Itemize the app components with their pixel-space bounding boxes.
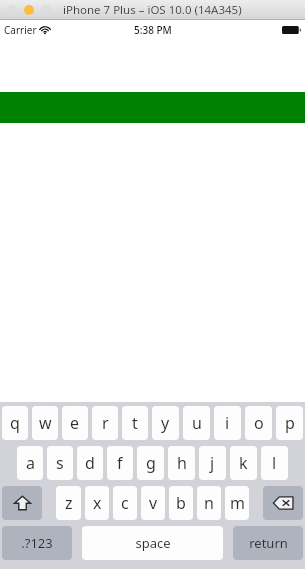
- button[interactable]: l: [261, 446, 288, 480]
- staticText: s: [56, 452, 64, 474]
- staticText: e: [70, 412, 80, 434]
- button[interactable]: f: [107, 446, 133, 480]
- staticText: n: [204, 492, 214, 514]
- button[interactable]: y: [152, 406, 179, 440]
- staticText: .?123: [21, 534, 53, 552]
- staticText: j: [210, 452, 215, 474]
- button[interactable]: c: [113, 486, 137, 520]
- staticText: 5:38 PM: [134, 23, 172, 37]
- button[interactable]: j: [199, 446, 226, 480]
- staticText: space: [135, 534, 171, 552]
- button[interactable]: u: [183, 406, 210, 440]
- staticText: c: [121, 492, 129, 514]
- staticText: t: [132, 412, 138, 434]
- button[interactable]: Shift: [2, 486, 42, 520]
- staticText: k: [239, 452, 248, 474]
- button[interactable]: i: [214, 406, 241, 440]
- button[interactable]: o: [245, 406, 272, 440]
- button[interactable]: h: [168, 446, 195, 480]
- staticText: l: [272, 452, 277, 474]
- staticText: b: [176, 492, 186, 514]
- button[interactable]: x: [85, 486, 109, 520]
- button[interactable]: return: [233, 526, 303, 560]
- staticText: i: [225, 412, 230, 434]
- staticText: o: [254, 412, 264, 434]
- staticText: Carrier: [4, 23, 37, 37]
- button[interactable]: d: [77, 446, 103, 480]
- button[interactable]: .?123: [2, 526, 72, 560]
- button[interactable]: e: [62, 406, 88, 440]
- button[interactable]: Minimize window: [24, 5, 34, 15]
- button[interactable]: n: [197, 486, 221, 520]
- button[interactable]: z: [56, 486, 81, 520]
- staticText: q: [10, 412, 20, 434]
- staticText: z: [65, 492, 73, 514]
- staticText: r: [102, 412, 109, 434]
- staticText: a: [26, 452, 35, 474]
- staticText: u: [192, 412, 202, 434]
- staticText: m: [230, 492, 245, 514]
- button[interactable]: p: [276, 406, 303, 440]
- staticText: p: [285, 412, 295, 434]
- button[interactable]: k: [230, 446, 257, 480]
- button[interactable]: r: [92, 406, 118, 440]
- button[interactable]: a: [17, 446, 43, 480]
- button[interactable]: s: [47, 446, 73, 480]
- staticText: f: [117, 452, 123, 474]
- button[interactable]: b: [169, 486, 193, 520]
- staticText: v: [149, 492, 158, 514]
- staticText: x: [93, 492, 102, 514]
- staticText: iPhone 7 Plus – iOS 10.0 (14A345): [63, 2, 242, 18]
- staticText: y: [161, 412, 170, 434]
- button[interactable]: t: [122, 406, 148, 440]
- button[interactable]: g: [137, 446, 164, 480]
- button[interactable]: space: [82, 526, 223, 560]
- staticText: h: [177, 452, 187, 474]
- staticText: w: [39, 412, 52, 434]
- button[interactable]: w: [32, 406, 58, 440]
- button[interactable]: Backspace: [263, 486, 303, 520]
- button[interactable]: v: [141, 486, 165, 520]
- staticText: g: [146, 452, 156, 474]
- staticText: return: [249, 534, 288, 552]
- staticText: d: [85, 452, 95, 474]
- button[interactable]: m: [225, 486, 249, 520]
- button[interactable]: q: [2, 406, 28, 440]
